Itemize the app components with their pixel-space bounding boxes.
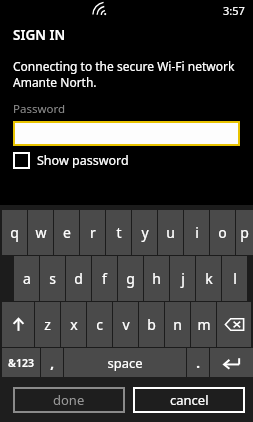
staticText: f bbox=[102, 269, 107, 288]
staticText: y bbox=[141, 223, 149, 242]
button[interactable]: Shift bbox=[2, 302, 34, 347]
button[interactable]: cancel bbox=[133, 387, 245, 413]
button[interactable]: k bbox=[196, 256, 221, 301]
staticText: h bbox=[152, 269, 161, 288]
button[interactable]: e bbox=[54, 210, 79, 255]
staticText: a bbox=[23, 269, 31, 288]
button[interactable]: g bbox=[118, 256, 143, 301]
button[interactable]: &123 bbox=[2, 348, 40, 377]
staticText: SIGN IN bbox=[13, 26, 66, 44]
staticText: space bbox=[107, 354, 143, 372]
button[interactable]: a bbox=[14, 256, 39, 301]
button[interactable]: m bbox=[191, 302, 216, 347]
button[interactable]: f bbox=[92, 256, 117, 301]
staticText: o bbox=[218, 223, 227, 242]
staticText: x bbox=[70, 315, 78, 334]
button[interactable]: v bbox=[113, 302, 138, 347]
button[interactable]: r bbox=[80, 210, 105, 255]
staticText: g bbox=[126, 269, 135, 288]
button[interactable]: c bbox=[87, 302, 112, 347]
button[interactable]: done bbox=[13, 387, 125, 413]
staticText: e bbox=[63, 223, 71, 242]
staticText: s bbox=[49, 269, 56, 288]
staticText: Password bbox=[13, 101, 66, 117]
staticText: v bbox=[122, 315, 130, 334]
staticText: &123 bbox=[8, 356, 34, 370]
staticText: m bbox=[197, 315, 211, 334]
staticText: j bbox=[181, 269, 185, 288]
button[interactable]: , bbox=[41, 348, 63, 377]
staticText: c bbox=[96, 315, 103, 334]
staticText: i bbox=[195, 223, 199, 242]
staticText: Show password bbox=[37, 152, 129, 169]
staticText: p bbox=[240, 223, 249, 242]
button[interactable]: w bbox=[28, 210, 53, 255]
button[interactable]: Backspace bbox=[217, 302, 251, 347]
staticText: w bbox=[35, 223, 47, 242]
staticText: q bbox=[10, 223, 19, 242]
button[interactable]: b bbox=[139, 302, 164, 347]
button[interactable] bbox=[13, 121, 240, 146]
button[interactable]: Show password bbox=[13, 152, 129, 169]
staticText: k bbox=[205, 269, 213, 288]
button[interactable]: o bbox=[210, 210, 235, 255]
staticText: cancel bbox=[170, 391, 209, 409]
button[interactable]: t bbox=[106, 210, 131, 255]
staticText: . bbox=[196, 354, 200, 372]
staticText: Connecting to the secure Wi-Fi network A… bbox=[13, 58, 240, 90]
button[interactable]: . bbox=[187, 348, 209, 377]
staticText: z bbox=[44, 315, 51, 334]
button[interactable]: h bbox=[144, 256, 169, 301]
button[interactable]: p bbox=[236, 210, 253, 255]
button[interactable]: l bbox=[222, 256, 247, 301]
staticText: d bbox=[74, 269, 83, 288]
staticText: 3:57 bbox=[223, 3, 245, 18]
button[interactable]: space bbox=[64, 348, 186, 377]
button[interactable]: q bbox=[2, 210, 27, 255]
staticText: b bbox=[147, 315, 156, 334]
staticText: done bbox=[53, 391, 85, 409]
button[interactable]: Enter bbox=[210, 348, 253, 377]
staticText: l bbox=[233, 269, 237, 288]
button[interactable]: u bbox=[158, 210, 183, 255]
button[interactable]: x bbox=[61, 302, 86, 347]
button[interactable]: i bbox=[184, 210, 209, 255]
button[interactable]: y bbox=[132, 210, 157, 255]
staticText: n bbox=[173, 315, 182, 334]
staticText: t bbox=[116, 223, 122, 242]
button[interactable]: z bbox=[35, 302, 60, 347]
staticText: , bbox=[50, 354, 54, 372]
staticText: r bbox=[90, 223, 96, 242]
button[interactable]: s bbox=[40, 256, 65, 301]
button[interactable]: j bbox=[170, 256, 195, 301]
button[interactable]: n bbox=[165, 302, 190, 347]
button[interactable]: d bbox=[66, 256, 91, 301]
staticText: u bbox=[166, 223, 175, 242]
